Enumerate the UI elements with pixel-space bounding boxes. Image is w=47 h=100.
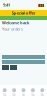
staticText: Tab <box>40 93 44 97</box>
staticText: Special offer <box>11 10 35 16</box>
staticText: Tab <box>21 93 25 97</box>
staticText: Tab <box>31 93 35 97</box>
staticText: 9:41 <box>3 2 10 8</box>
staticText: Tab <box>12 93 16 97</box>
staticText: ▮▮▮ <box>38 3 44 7</box>
staticText: Your orders <box>2 26 23 32</box>
staticText: Tab <box>3 93 7 97</box>
staticText: Welcome back <box>2 20 29 25</box>
